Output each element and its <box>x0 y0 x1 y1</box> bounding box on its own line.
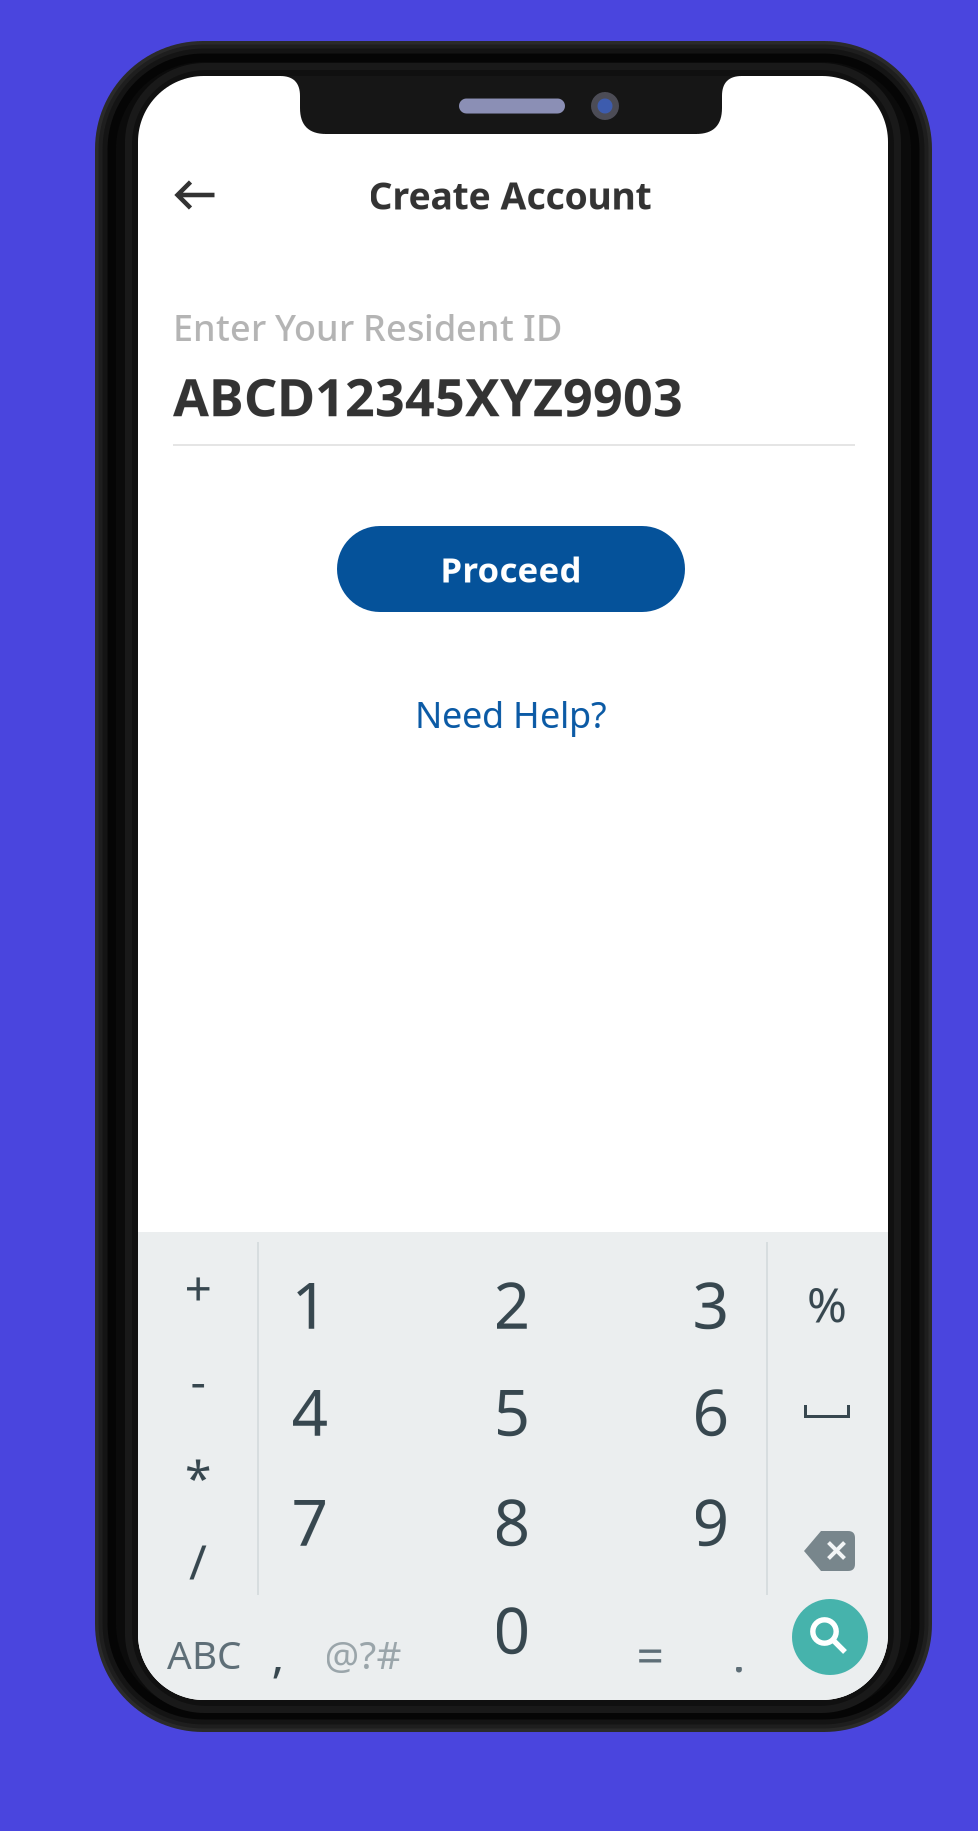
staticText: 7 <box>291 1478 328 1563</box>
staticText: / <box>189 1529 207 1593</box>
button[interactable]: Space <box>768 1361 886 1461</box>
button[interactable]: 4 <box>226 1359 394 1463</box>
button[interactable]: @?# <box>305 1613 421 1695</box>
button[interactable]: ABC <box>149 1613 259 1695</box>
staticText: ABC <box>167 1628 241 1680</box>
staticText: 9 <box>692 1478 729 1563</box>
staticText: Need Help? <box>415 690 607 738</box>
button[interactable]: 5 <box>428 1359 596 1463</box>
staticText: Enter Your Resident ID <box>173 303 562 351</box>
staticText: - <box>190 1348 205 1412</box>
staticText: 4 <box>291 1368 328 1453</box>
button[interactable]: Proceed <box>337 526 685 612</box>
button[interactable]: 6 <box>627 1359 795 1463</box>
staticText: 5 <box>493 1368 530 1453</box>
staticText: 6 <box>692 1368 729 1453</box>
button[interactable]: * <box>140 1432 256 1522</box>
button[interactable]: 8 <box>428 1469 596 1573</box>
staticText: , <box>271 1622 284 1686</box>
button[interactable]: = <box>610 1613 690 1695</box>
staticText: 3 <box>692 1261 729 1346</box>
button[interactable]: , <box>251 1613 305 1695</box>
staticText: . <box>732 1622 745 1686</box>
button[interactable]: % <box>768 1254 886 1354</box>
button[interactable]: + <box>140 1242 256 1332</box>
staticText: ABCD12345XYZ9903 <box>173 361 683 431</box>
button[interactable]: 0 <box>428 1577 596 1681</box>
button[interactable]: Search <box>782 1589 878 1685</box>
button[interactable]: Backspace <box>771 1501 889 1601</box>
staticText: Create Account <box>368 170 651 220</box>
button[interactable]: . <box>707 1613 771 1695</box>
button[interactable]: / <box>140 1516 256 1606</box>
staticText: = <box>636 1622 663 1686</box>
button[interactable]: Need Help? <box>381 683 641 745</box>
staticText: 2 <box>493 1261 530 1346</box>
staticText: Proceed <box>440 546 581 592</box>
button[interactable]: 7 <box>226 1469 394 1573</box>
button[interactable]: Back <box>153 157 239 233</box>
button[interactable]: 1 <box>226 1252 394 1356</box>
staticText: @?# <box>324 1628 401 1680</box>
staticText: 1 <box>291 1261 328 1346</box>
staticText: 0 <box>493 1586 530 1671</box>
button[interactable]: 3 <box>627 1252 795 1356</box>
staticText: 8 <box>493 1478 530 1563</box>
button[interactable]: 2 <box>428 1252 596 1356</box>
button[interactable]: - <box>140 1335 256 1425</box>
staticText: % <box>807 1272 847 1336</box>
staticText: + <box>184 1255 211 1319</box>
staticText: * <box>185 1445 211 1509</box>
button[interactable]: 9 <box>627 1469 795 1573</box>
